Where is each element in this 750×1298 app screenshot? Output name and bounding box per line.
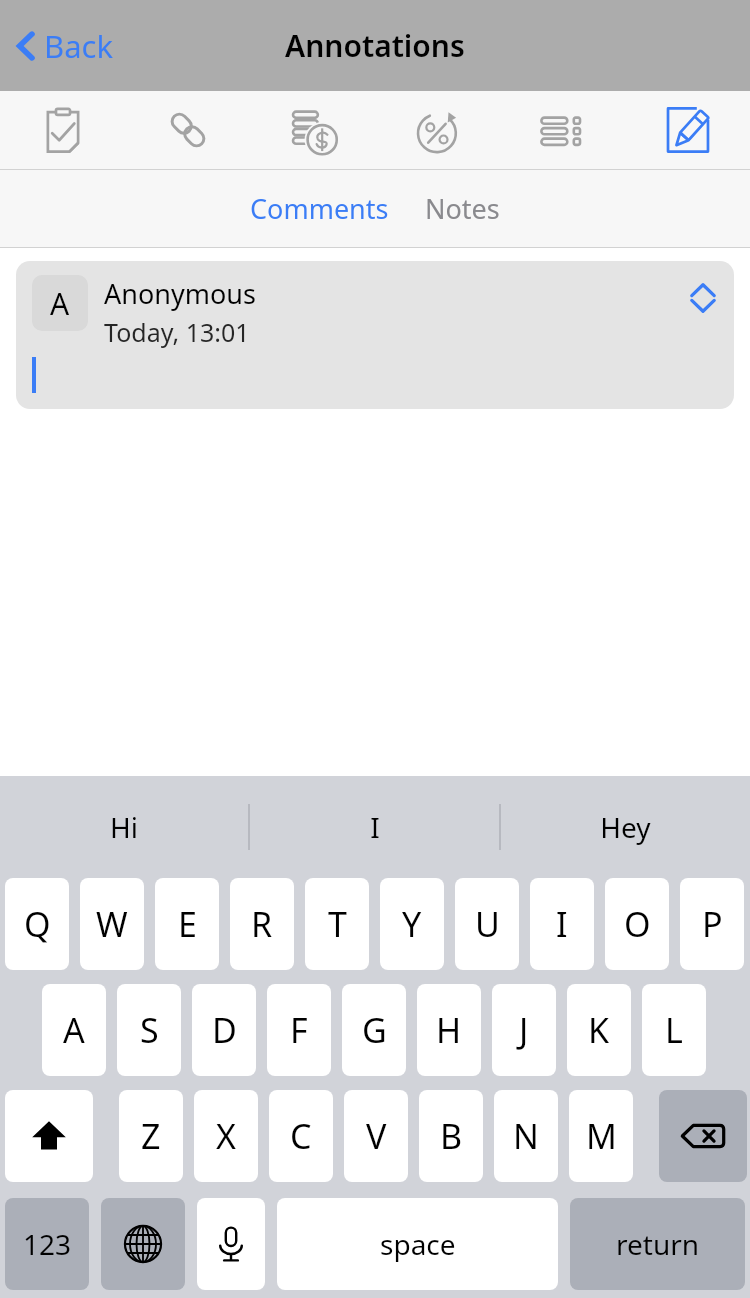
button[interactable]: O [605, 878, 669, 970]
button[interactable]: Costs [250, 91, 375, 169]
staticText: Today, 13:01 [104, 315, 250, 349]
button[interactable]: A [42, 984, 106, 1076]
button[interactable]: H [417, 984, 481, 1076]
staticText: Z [141, 1113, 161, 1159]
button[interactable]: L [642, 984, 706, 1076]
button[interactable]: Backspace [659, 1090, 747, 1182]
button[interactable]: Hey [501, 776, 750, 878]
staticText: U [475, 901, 500, 947]
button[interactable]: C [269, 1090, 333, 1182]
button[interactable]: Hi [0, 776, 248, 878]
staticText: return [616, 1225, 700, 1263]
button[interactable]: Annotations [625, 91, 750, 169]
staticText: J [519, 1007, 529, 1053]
button[interactable]: D [192, 984, 256, 1076]
button[interactable]: Z [119, 1090, 183, 1182]
button[interactable]: X [194, 1090, 258, 1182]
staticText: V [366, 1113, 387, 1159]
button[interactable]: return [570, 1198, 745, 1290]
staticText: O [624, 901, 651, 947]
button[interactable]: Y [380, 878, 444, 970]
staticText: Comments [250, 190, 389, 227]
staticText: P [702, 901, 723, 947]
staticText: Y [402, 901, 422, 947]
button[interactable]: I [530, 878, 594, 970]
button[interactable]: J [492, 984, 556, 1076]
button[interactable]: Q [5, 878, 69, 970]
staticText: I [556, 901, 568, 947]
staticText: E [178, 901, 197, 947]
button[interactable]: Dictate [197, 1198, 265, 1290]
staticText: L [665, 1007, 683, 1053]
button[interactable]: Expand comment [686, 281, 720, 315]
staticText: Annotations [285, 25, 465, 66]
staticText: W [96, 901, 128, 947]
staticText: Notes [425, 190, 500, 227]
button[interactable]: U [455, 878, 519, 970]
button[interactable]: Links [125, 91, 250, 169]
staticText: I [370, 808, 380, 846]
button[interactable]: A [16, 261, 734, 409]
button[interactable]: B [419, 1090, 483, 1182]
button[interactable]: space [277, 1198, 558, 1290]
staticText: Anonymous [104, 275, 256, 312]
button[interactable]: N [494, 1090, 558, 1182]
staticText: X [216, 1113, 236, 1159]
staticText: A [50, 283, 70, 324]
staticText: K [588, 1007, 610, 1053]
staticText: Hi [110, 808, 138, 846]
button[interactable]: R [230, 878, 294, 970]
button[interactable]: S [117, 984, 181, 1076]
button[interactable]: F [267, 984, 331, 1076]
staticText: C [290, 1113, 312, 1159]
button[interactable]: E [155, 878, 219, 970]
staticText: B [440, 1113, 463, 1159]
button[interactable]: V [344, 1090, 408, 1182]
button[interactable]: M [569, 1090, 633, 1182]
staticText: R [251, 901, 273, 947]
button[interactable]: Shift [5, 1090, 93, 1182]
staticText: A [63, 1007, 85, 1053]
staticText: F [290, 1007, 308, 1053]
staticText: Hey [600, 808, 651, 846]
button[interactable]: Back [10, 17, 119, 75]
button[interactable]: List [500, 91, 625, 169]
staticText: 123 [23, 1225, 72, 1263]
staticText: T [328, 901, 347, 947]
button[interactable]: G [342, 984, 406, 1076]
button[interactable]: 123 [5, 1198, 89, 1290]
staticText: Q [24, 901, 51, 947]
button[interactable]: I [250, 776, 499, 878]
staticText: H [436, 1007, 462, 1053]
button[interactable]: Comments [240, 180, 399, 237]
staticText: M [586, 1113, 617, 1159]
button[interactable]: T [305, 878, 369, 970]
button[interactable]: K [567, 984, 631, 1076]
button[interactable]: W [80, 878, 144, 970]
button[interactable]: Percent [375, 91, 500, 169]
button[interactable]: Change keyboard [101, 1198, 185, 1290]
button[interactable]: Tasks [0, 91, 125, 169]
button[interactable]: Notes [415, 180, 510, 237]
staticText: Back [44, 25, 113, 67]
staticText: N [513, 1113, 539, 1159]
staticText: S [140, 1007, 159, 1053]
staticText: G [362, 1007, 387, 1053]
staticText: space [380, 1225, 456, 1263]
staticText: D [212, 1007, 237, 1053]
button[interactable]: P [680, 878, 744, 970]
